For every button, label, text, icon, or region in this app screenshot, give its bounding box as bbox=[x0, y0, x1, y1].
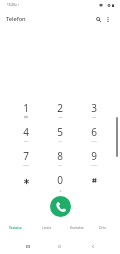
staticText: 1 bbox=[23, 101, 29, 115]
staticText: 8 bbox=[57, 149, 63, 163]
button[interactable]: Search bbox=[92, 13, 104, 25]
button[interactable]: 8 bbox=[43, 146, 77, 170]
button[interactable] bbox=[9, 170, 43, 194]
staticText: 2 bbox=[57, 101, 63, 115]
button[interactable]: Back bbox=[85, 238, 101, 254]
staticText: 3 bbox=[91, 101, 97, 115]
button[interactable]: More options bbox=[102, 13, 114, 25]
staticText: + bbox=[59, 188, 62, 194]
button[interactable]: 1 bbox=[9, 98, 43, 122]
button[interactable]: 7 bbox=[9, 146, 43, 170]
staticText: Kontakte bbox=[70, 225, 84, 229]
button[interactable]: 3 bbox=[77, 98, 111, 122]
staticText: 7 bbox=[23, 149, 29, 163]
staticText: Orte bbox=[99, 225, 106, 229]
button[interactable]: Kontakte bbox=[62, 220, 92, 234]
button[interactable]: 0 bbox=[43, 170, 77, 194]
button[interactable]: Orte bbox=[88, 220, 116, 234]
staticText: Letzte bbox=[42, 225, 52, 229]
staticText: 5 bbox=[57, 125, 63, 139]
staticText: 13:20 bbox=[7, 3, 15, 7]
staticText: Tastatur bbox=[9, 225, 22, 229]
staticText: PQRS bbox=[23, 164, 29, 167]
button[interactable]: Recent apps bbox=[20, 238, 36, 254]
button[interactable]: Home bbox=[51, 238, 67, 254]
button[interactable]: 4 bbox=[9, 122, 43, 146]
button[interactable]: Call bbox=[50, 196, 71, 217]
staticText: TUV bbox=[58, 164, 62, 167]
staticText: DEF bbox=[92, 116, 96, 119]
staticText: 9 bbox=[91, 149, 97, 163]
button[interactable]: 2 bbox=[43, 98, 77, 122]
button[interactable]: 5 bbox=[43, 122, 77, 146]
staticText: 6 bbox=[91, 125, 97, 139]
staticText: JKL bbox=[59, 140, 62, 143]
button[interactable]: Letzte bbox=[33, 220, 61, 234]
staticText: 0 bbox=[57, 173, 63, 187]
staticText: Telefon bbox=[6, 15, 26, 23]
staticText: WXYZ bbox=[91, 164, 97, 167]
button[interactable]: 9 bbox=[77, 146, 111, 170]
staticText: 4 bbox=[23, 125, 29, 139]
staticText: ABC bbox=[58, 116, 63, 119]
button[interactable]: Tastatur bbox=[0, 220, 31, 234]
button[interactable]: 6 bbox=[77, 122, 111, 146]
staticText: MNO bbox=[91, 140, 97, 143]
button[interactable] bbox=[77, 170, 111, 194]
staticText: GHI bbox=[24, 140, 28, 143]
